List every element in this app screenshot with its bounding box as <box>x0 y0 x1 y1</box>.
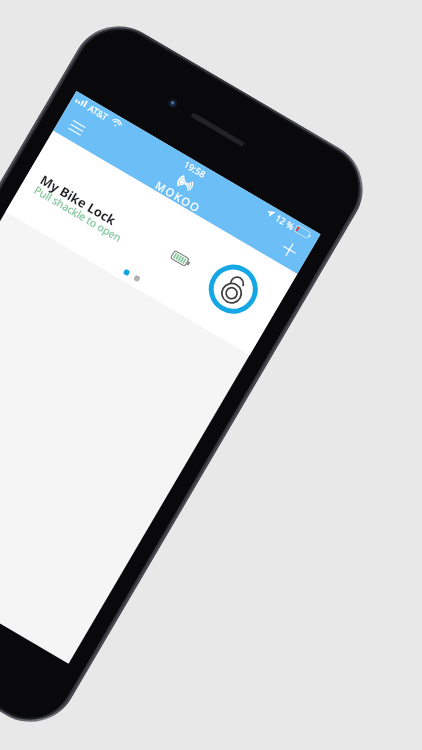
button[interactable]: My Bike Lock <box>6 131 297 355</box>
button[interactable]: Add lock <box>276 236 303 263</box>
staticText: 12 % <box>273 211 298 232</box>
button[interactable]: Menu <box>63 115 91 141</box>
button[interactable]: Unlock <box>200 256 267 323</box>
staticText: MOKOO <box>153 177 204 216</box>
staticText: 19:58 <box>182 158 209 180</box>
staticText: AT&T <box>86 102 110 123</box>
staticText: Pull shackle to open <box>32 183 124 245</box>
staticText: My Bike Lock <box>37 171 119 229</box>
